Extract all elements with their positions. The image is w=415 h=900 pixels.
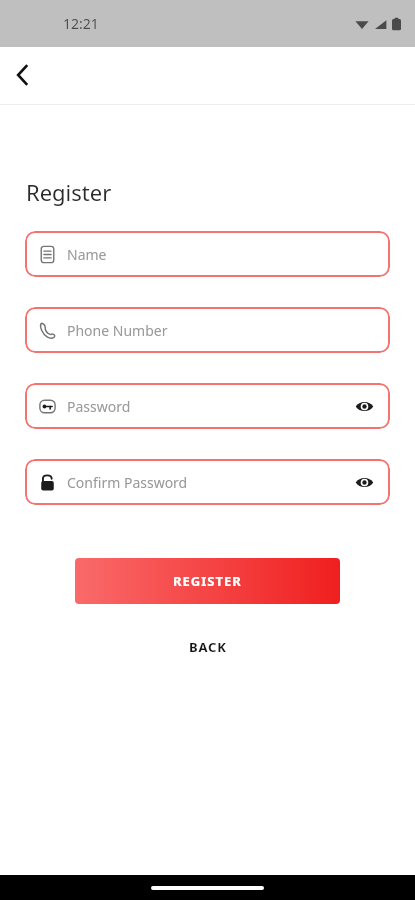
button[interactable]: Show password: [351, 469, 377, 495]
button[interactable]: REGISTER: [75, 558, 340, 604]
staticText: BACK: [189, 638, 227, 656]
staticText: REGISTER: [173, 572, 242, 590]
button[interactable]: Password: [25, 383, 390, 429]
staticText: Password: [67, 397, 131, 416]
button[interactable]: Confirm Password: [25, 459, 390, 505]
button[interactable]: Phone Number: [25, 307, 390, 353]
staticText: Register: [26, 177, 112, 207]
button[interactable]: Show password: [351, 393, 377, 419]
button[interactable]: Back: [4, 57, 40, 93]
button[interactable]: BACK: [169, 632, 247, 662]
staticText: Confirm Password: [67, 473, 188, 492]
staticText: 12:21: [63, 14, 99, 33]
button[interactable]: Name: [25, 231, 390, 277]
staticText: Name: [67, 245, 107, 264]
staticText: Phone Number: [67, 321, 168, 340]
